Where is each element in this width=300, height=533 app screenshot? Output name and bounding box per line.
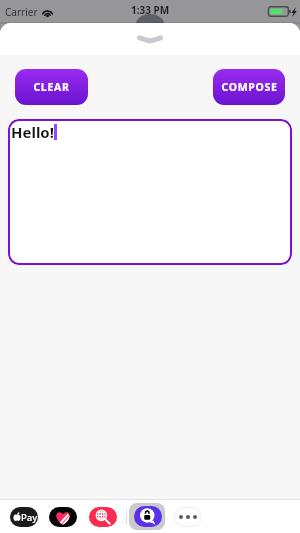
button[interactable]: Images (89, 506, 117, 527)
staticText: Hello! (11, 122, 54, 142)
staticText: Pay (21, 511, 38, 524)
button[interactable]: More apps (174, 506, 202, 527)
staticText: Carrier (5, 5, 38, 19)
staticText: COMPOSE (221, 80, 278, 94)
button[interactable]: Apple Pay (10, 506, 38, 527)
button[interactable]: Collapse (0, 23, 300, 55)
button[interactable]: Secure messages (134, 506, 162, 527)
staticText: 1:33 PM (131, 3, 170, 17)
staticText: CLEAR (33, 80, 70, 94)
button[interactable]: COMPOSE (213, 69, 285, 105)
button[interactable]: Digital Touch (49, 506, 77, 527)
button[interactable]: CLEAR (15, 69, 88, 105)
button[interactable]: Hello! (8, 119, 292, 265)
